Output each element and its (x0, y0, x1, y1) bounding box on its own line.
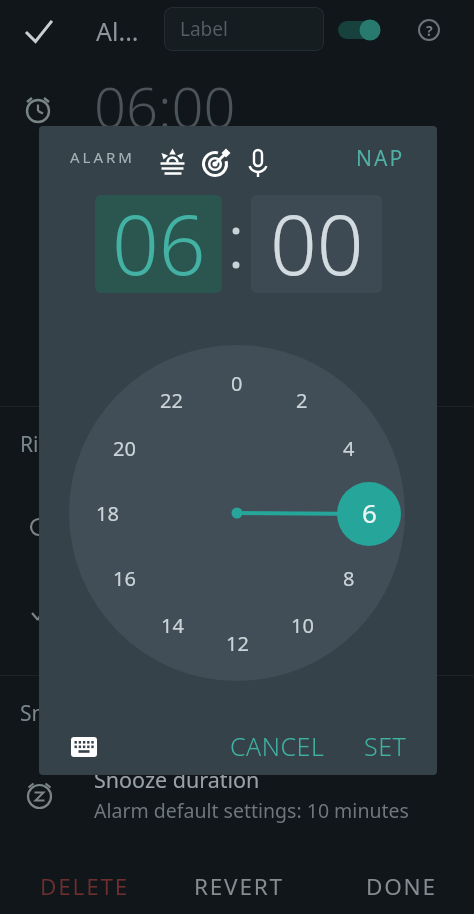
staticText: ALARM (70, 147, 135, 167)
button[interactable]: REVERT (169, 871, 309, 899)
button[interactable]: NAP (339, 144, 405, 170)
staticText: 18 (96, 500, 119, 527)
button[interactable]: CANCEL (222, 729, 332, 761)
staticText: 00 (270, 195, 364, 285)
staticText: Al... (96, 14, 139, 48)
button[interactable]: DELETE (40, 871, 150, 899)
staticText: 6 (362, 495, 377, 530)
staticText: NAP (356, 144, 405, 170)
staticText: Sn (20, 699, 45, 725)
staticText: 14 (161, 612, 184, 639)
button[interactable]: DONE (330, 871, 437, 899)
staticText: DONE (366, 871, 437, 899)
staticText: 12 (226, 630, 249, 657)
staticText: 2 (296, 387, 308, 414)
staticText: 06:00 (94, 68, 236, 132)
staticText: Label (180, 16, 228, 42)
staticText: 20 (113, 435, 136, 462)
button[interactable]: 00 (251, 195, 382, 293)
staticText: SET (364, 729, 407, 761)
staticText: 22 (160, 387, 183, 414)
button[interactable]: SET (345, 729, 425, 761)
button[interactable] (24, 17, 54, 47)
staticText: 4 (343, 435, 355, 462)
staticText: Rin (20, 430, 50, 456)
staticText: CANCEL (230, 729, 325, 761)
staticText: DELETE (40, 871, 130, 899)
staticText: 06 (112, 195, 206, 285)
staticText: ? (426, 21, 433, 40)
staticText: Alarm default settings: 10 minutes (94, 797, 409, 823)
staticText: 8 (343, 565, 355, 592)
button[interactable]: 6 (337, 482, 401, 546)
staticText: 10 (291, 612, 314, 639)
button[interactable] (69, 734, 99, 760)
staticText: 0 (231, 370, 243, 397)
staticText: 16 (113, 565, 136, 592)
button[interactable]: 06 (95, 195, 222, 293)
staticText: Snooze duration (94, 765, 260, 794)
button[interactable] (336, 18, 382, 42)
button[interactable]: Label (164, 7, 324, 51)
button[interactable]: ? (417, 18, 441, 42)
staticText: REVERT (194, 871, 284, 899)
